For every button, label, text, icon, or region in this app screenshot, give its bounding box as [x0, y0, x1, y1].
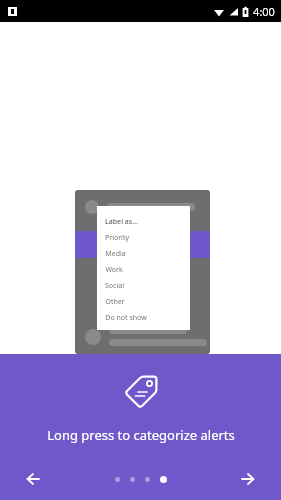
button[interactable]: Other	[105, 294, 182, 310]
staticText: Priority	[105, 233, 129, 243]
button[interactable]	[160, 476, 167, 483]
button[interactable]: Priority	[105, 230, 182, 246]
button[interactable]: Previous	[18, 464, 48, 494]
staticText: Social	[105, 281, 124, 291]
button[interactable]	[115, 477, 120, 482]
staticText: Work	[105, 265, 123, 275]
staticText: 4:00	[253, 4, 275, 19]
staticText: Label as...	[105, 217, 138, 227]
staticText: Long press to categorize alerts	[47, 426, 235, 444]
button[interactable]	[130, 477, 135, 482]
button[interactable]: Next	[233, 464, 263, 494]
button[interactable]: Label as...	[105, 214, 182, 230]
staticText: Media	[105, 249, 126, 259]
button[interactable]	[145, 477, 150, 482]
staticText: Do not show	[105, 313, 147, 323]
button[interactable]: Media	[105, 246, 182, 262]
button[interactable]: Do not show	[105, 310, 182, 326]
staticText: Other	[105, 297, 125, 307]
other: Label tag	[121, 372, 161, 412]
button[interactable]: Work	[105, 262, 182, 278]
button[interactable]: Social	[105, 278, 182, 294]
